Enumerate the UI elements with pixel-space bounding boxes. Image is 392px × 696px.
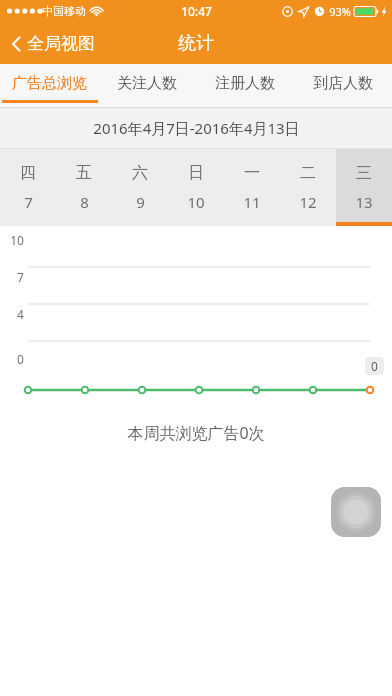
staticText: 广告总浏览 [12, 74, 87, 93]
button[interactable]: 二 [280, 149, 336, 226]
staticText: 五 [76, 163, 92, 183]
button[interactable]: AssistiveTouch [331, 487, 381, 537]
staticText: 12 [299, 192, 317, 212]
staticText: 13 [355, 192, 373, 212]
staticText: 到店人数 [313, 74, 373, 93]
staticText: 中国移动 [42, 4, 86, 18]
button[interactable]: 一 [224, 149, 280, 226]
button[interactable]: 注册人数 [196, 64, 294, 108]
button[interactable]: 六 [112, 149, 168, 226]
button[interactable]: 三 [336, 149, 392, 226]
staticText: 0 [371, 358, 378, 374]
staticText: 10:47 [181, 3, 212, 19]
staticText: 日 [188, 163, 204, 183]
staticText: 7 [17, 269, 24, 285]
button[interactable]: 全局视图 [0, 25, 109, 62]
button[interactable]: 到店人数 [294, 64, 392, 108]
staticText: 六 [132, 163, 148, 183]
staticText: 2016年4月7日-2016年4月13日 [93, 118, 300, 138]
staticText: 93% [329, 4, 351, 19]
button[interactable]: 四 [0, 149, 56, 226]
staticText: 全局视图 [27, 33, 95, 54]
button[interactable]: 日 [168, 149, 224, 226]
staticText: 4 [17, 306, 24, 322]
staticText: 本周共浏览广告0次 [127, 422, 265, 444]
staticText: 9 [136, 192, 145, 212]
staticText: 10 [187, 192, 205, 212]
staticText: 10 [10, 232, 24, 248]
staticText: 四 [20, 163, 36, 183]
staticText: 7 [24, 192, 33, 212]
button[interactable]: 广告总浏览 [0, 64, 98, 108]
staticText: 二 [300, 163, 316, 183]
staticText: 0 [17, 351, 24, 367]
staticText: 统计 [178, 32, 214, 55]
staticText: 8 [80, 192, 89, 212]
staticText: 三 [356, 163, 372, 183]
staticText: 关注人数 [117, 74, 177, 93]
button[interactable]: 2016年4月7日-2016年4月13日 [0, 108, 392, 148]
staticText: 11 [243, 192, 261, 212]
button[interactable]: 五 [56, 149, 112, 226]
button[interactable]: 关注人数 [98, 64, 196, 108]
staticText: 注册人数 [215, 74, 275, 93]
staticText: 一 [244, 163, 260, 183]
